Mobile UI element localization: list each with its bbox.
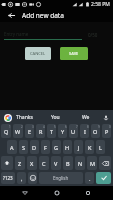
button[interactable]: V <box>51 156 61 170</box>
staticText: R <box>39 128 43 135</box>
button[interactable]: You <box>45 110 65 124</box>
staticText: Add new data <box>22 11 64 20</box>
button[interactable]: N <box>75 156 85 170</box>
button[interactable]: English <box>39 172 83 184</box>
staticText: Z <box>18 160 22 167</box>
button[interactable]: P <box>102 124 111 138</box>
staticText: 0/50 <box>88 32 98 38</box>
staticText: D <box>32 144 37 151</box>
staticText: W <box>15 128 21 135</box>
button[interactable]: R <box>36 124 45 138</box>
staticText: U <box>71 128 76 135</box>
button[interactable]: X <box>27 156 37 170</box>
button[interactable]: We <box>76 110 96 124</box>
staticText: H <box>65 144 70 151</box>
button[interactable]: Recent apps <box>78 186 98 200</box>
staticText: L <box>99 144 102 151</box>
button[interactable]: E <box>25 124 34 138</box>
staticText: 0 <box>109 125 111 129</box>
staticText: 6 <box>65 125 67 129</box>
staticText: 3 <box>32 125 34 129</box>
staticText: O <box>93 128 98 135</box>
staticText: N <box>78 160 83 167</box>
staticText: 1 <box>9 125 11 129</box>
staticText: I <box>84 128 86 135</box>
button[interactable]: Period <box>85 172 94 184</box>
button[interactable]: CANCEL <box>25 47 51 60</box>
button[interactable]: I <box>80 124 89 138</box>
staticText: You <box>51 114 60 121</box>
staticText: F <box>44 144 47 151</box>
staticText: E <box>28 128 32 135</box>
staticText: 5 <box>54 125 56 129</box>
button[interactable]: Shift <box>1 156 13 170</box>
staticText: . <box>89 175 91 182</box>
button[interactable]: H <box>63 140 72 154</box>
staticText: T <box>50 128 54 135</box>
staticText: Q <box>4 128 9 135</box>
staticText: B <box>66 160 70 167</box>
staticText: , <box>21 175 23 182</box>
button[interactable]: K <box>85 140 94 154</box>
staticText: 9 <box>98 125 100 129</box>
button[interactable]: Q <box>1 124 11 138</box>
button[interactable]: F <box>41 140 50 154</box>
staticText: X <box>30 160 34 167</box>
button[interactable]: Emoji <box>28 172 37 184</box>
staticText: S <box>22 144 26 151</box>
staticText: P <box>105 128 109 135</box>
button[interactable]: Google <box>3 113 12 122</box>
button[interactable]: D <box>30 140 39 154</box>
button[interactable]: Comma <box>17 172 26 184</box>
staticText: Y <box>61 128 65 135</box>
staticText: M <box>90 160 95 167</box>
button[interactable]: Enter <box>96 172 111 184</box>
button[interactable]: T <box>47 124 56 138</box>
button[interactable]: Back <box>15 186 35 200</box>
button[interactable]: Voice input <box>101 113 110 122</box>
button[interactable]: Delete <box>99 156 111 170</box>
staticText: 2 <box>21 125 23 129</box>
button[interactable]: Navigate up <box>0 8 22 22</box>
button[interactable]: J <box>74 140 83 154</box>
button[interactable]: Thanks <box>13 110 35 124</box>
button[interactable]: M <box>87 156 97 170</box>
staticText: 7 <box>76 125 78 129</box>
button[interactable]: U <box>69 124 78 138</box>
button[interactable]: Home <box>47 186 67 200</box>
staticText: 4 <box>43 125 45 129</box>
staticText: C <box>42 160 46 167</box>
button[interactable]: B <box>63 156 73 170</box>
button[interactable]: Z <box>15 156 25 170</box>
staticText: V <box>54 160 58 167</box>
button[interactable]: O <box>91 124 100 138</box>
button[interactable]: S <box>19 140 28 154</box>
button[interactable]: C <box>39 156 49 170</box>
button[interactable]: L <box>96 140 105 154</box>
staticText: Entry name <box>4 31 29 37</box>
staticText: SAVE <box>69 51 79 56</box>
staticText: 2:58 PM <box>91 1 110 8</box>
staticText: J <box>78 144 80 151</box>
staticText: English <box>53 175 69 181</box>
staticText: K <box>88 144 92 151</box>
staticText: A <box>10 144 14 151</box>
staticText: CANCEL <box>30 51 46 56</box>
button[interactable]: ?123 <box>1 172 15 184</box>
button[interactable]: A <box>7 140 17 154</box>
button[interactable]: W <box>13 124 23 138</box>
button[interactable]: G <box>52 140 61 154</box>
button[interactable]: SAVE <box>60 47 88 60</box>
staticText: 8 <box>87 125 89 129</box>
staticText: ?123 <box>3 175 13 181</box>
staticText: We <box>82 114 90 121</box>
staticText: G <box>54 144 59 151</box>
button[interactable]: Y <box>58 124 67 138</box>
staticText: Thanks <box>16 114 33 121</box>
